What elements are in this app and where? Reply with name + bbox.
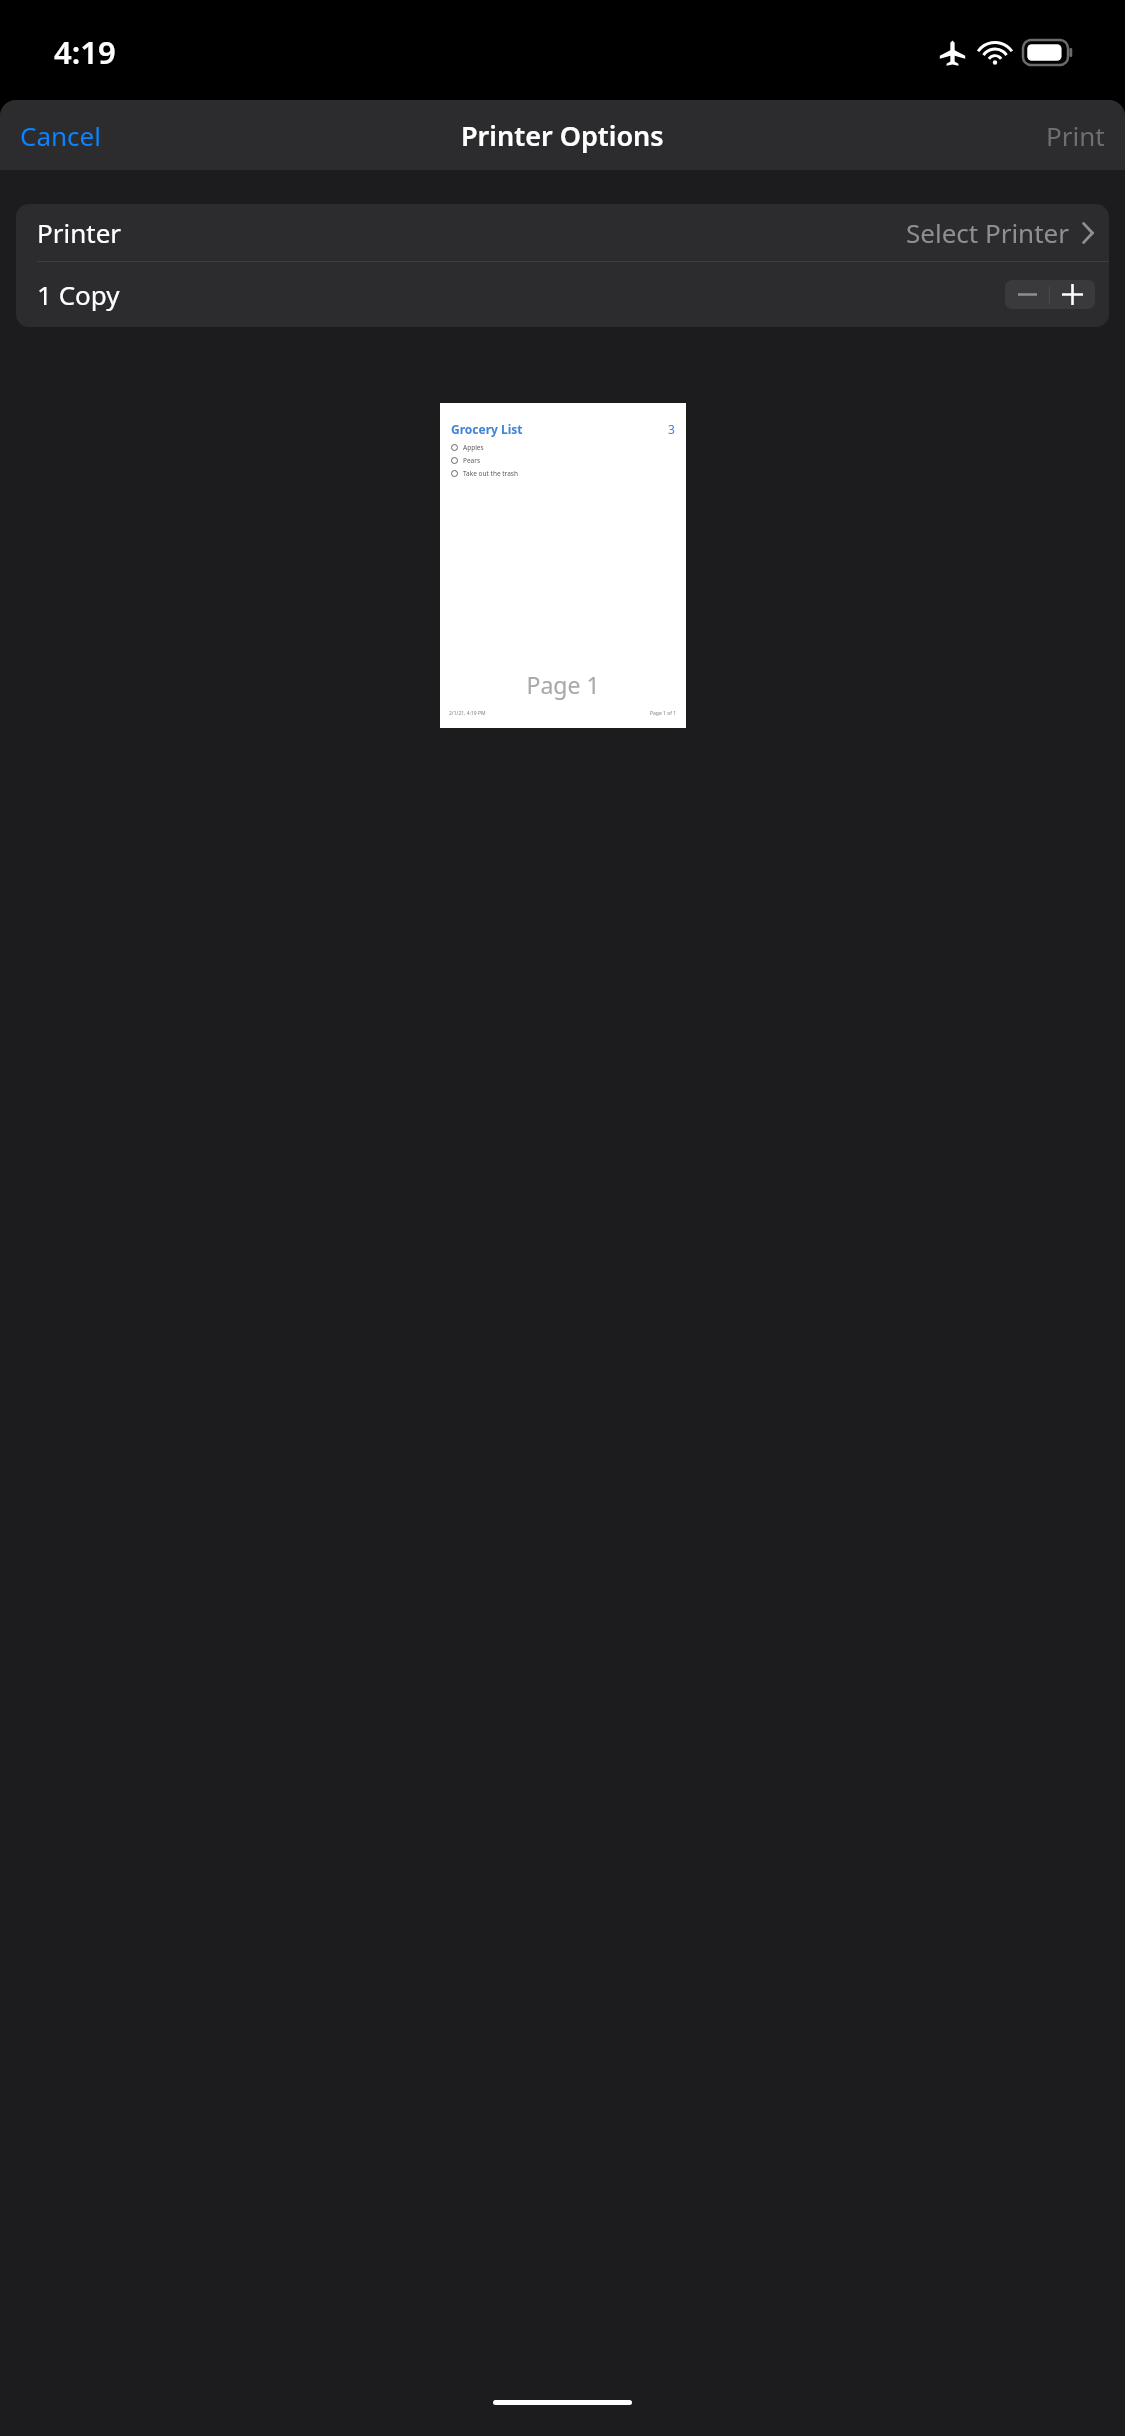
staticText: Pears (463, 456, 481, 465)
button[interactable]: Increase copies (1050, 280, 1095, 309)
button[interactable]: Decrease copies (1005, 280, 1049, 309)
button[interactable]: Cancel (0, 108, 121, 163)
staticText: Printer (37, 215, 122, 250)
staticText: Page 1 of 1 (650, 710, 677, 717)
staticText: Page 1 (440, 669, 686, 700)
staticText: 4:19 (54, 31, 116, 73)
button[interactable]: Print (1026, 108, 1125, 163)
staticText: 3 (668, 421, 675, 437)
staticText: Grocery List (451, 421, 523, 437)
staticText: Printer Options (461, 117, 664, 154)
staticText: Print (1046, 118, 1105, 153)
staticText: Select Printer (906, 215, 1069, 250)
button[interactable]: Printer (16, 204, 1109, 261)
staticText: Cancel (20, 118, 101, 153)
staticText: 1 Copy (37, 277, 120, 312)
staticText: Take out the trash (463, 469, 518, 478)
staticText: 2/1/21, 4:19 PM (449, 710, 486, 717)
staticText: Apples (463, 443, 484, 452)
